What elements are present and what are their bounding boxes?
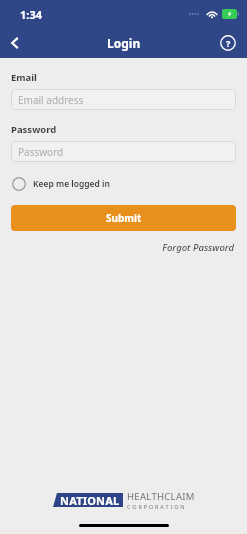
staticText: C O R P O R A T I O N [127,503,185,510]
staticText: HEALTHCLAIM [127,490,195,503]
staticText: Submit [106,211,142,225]
button[interactable]: Email address [11,89,236,110]
staticText: Password [11,123,57,136]
staticText: ? [226,37,231,49]
staticText: Keep me logged in [33,178,110,190]
staticText: Password [18,145,64,159]
button[interactable]: Submit [11,205,236,231]
staticText: NATIONAL [60,493,120,507]
staticText: Login [107,35,141,51]
button[interactable]: Password [11,141,236,162]
staticText: Email address [18,93,84,107]
staticText: Email [11,71,37,84]
button[interactable]: Back [0,28,30,58]
staticText: 1:34 [20,7,42,22]
button[interactable]: Help [215,30,241,56]
button[interactable]: Keep me logged in [11,175,111,193]
button[interactable]: Forgot Password [160,239,236,256]
